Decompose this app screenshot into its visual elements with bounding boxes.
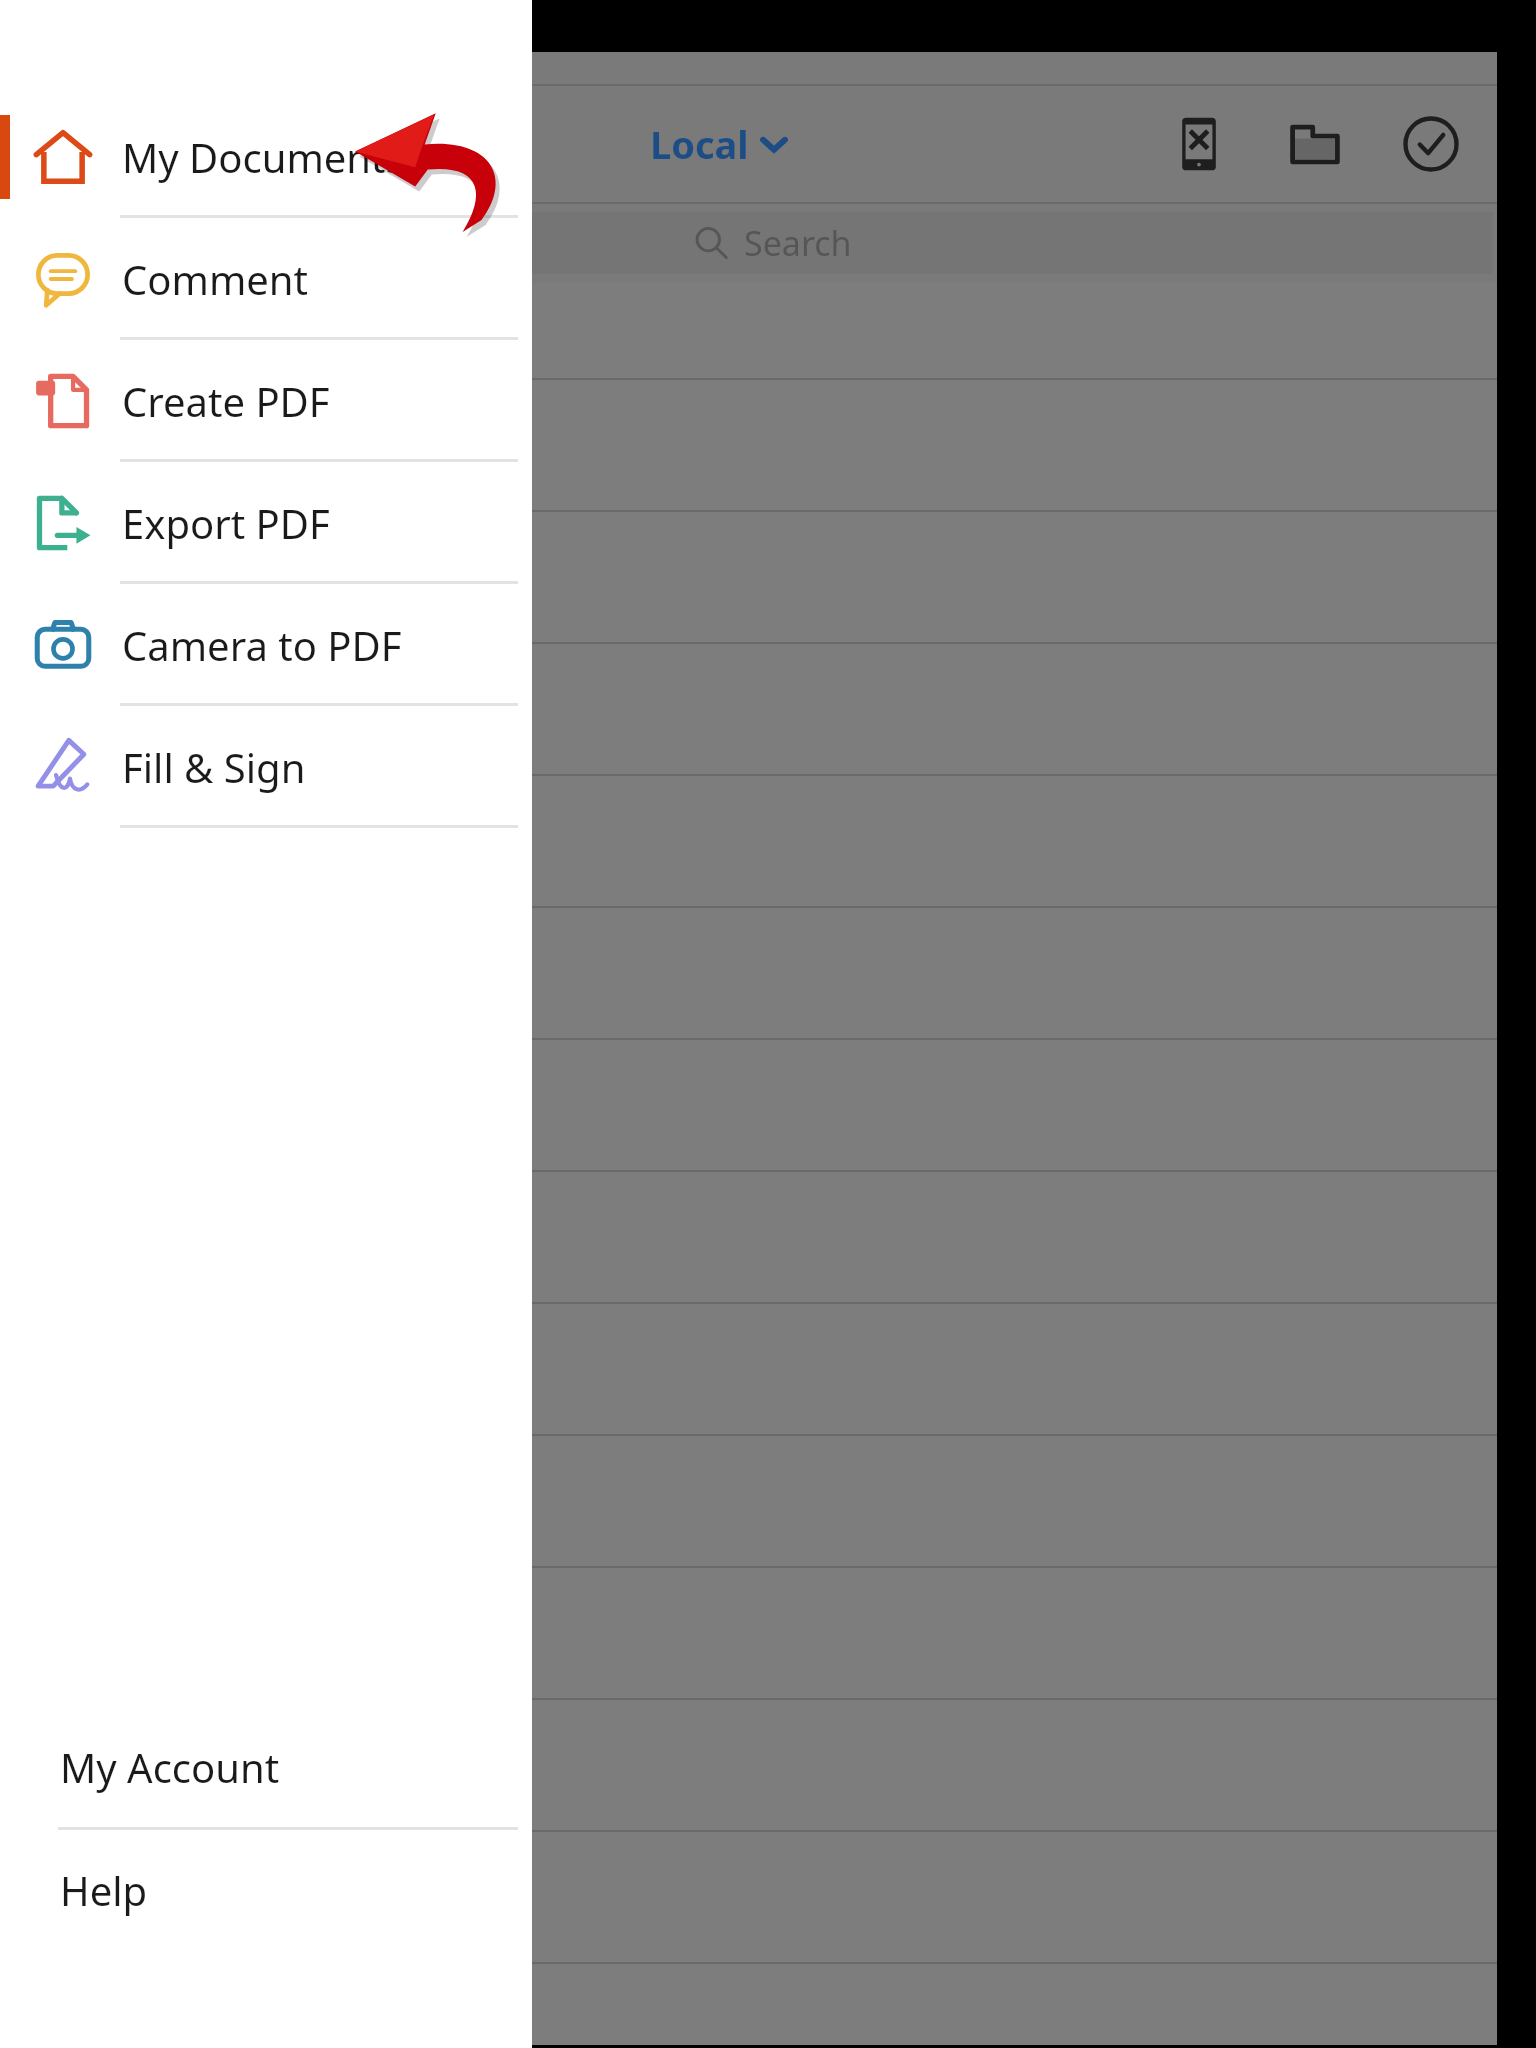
staticText: Camera to PDF [122,618,402,672]
button[interactable]: Camera to PDF [0,584,532,706]
staticText: My Documents [122,130,405,184]
button[interactable] [0,512,1497,642]
button[interactable] [0,1568,1497,1698]
button[interactable] [0,1436,1497,1566]
staticText: Search [744,220,852,266]
button[interactable] [0,1964,1497,2045]
button[interactable]: New folder [1279,108,1351,180]
button[interactable]: Create PDF [0,340,532,462]
button[interactable]: Export PDF [0,462,532,584]
button[interactable]: My Documents [0,96,532,218]
button[interactable] [0,1832,1497,1962]
button[interactable]: My Account [0,1707,532,1827]
staticText: My Account [60,1740,280,1794]
staticText: Export PDF [122,496,330,550]
button[interactable] [0,380,1497,510]
button[interactable]: Search [4,212,1493,274]
button[interactable]: Transfer to device [1163,108,1235,180]
button[interactable]: Fill & Sign [0,706,532,828]
button[interactable] [0,1304,1497,1434]
button[interactable] [0,644,1497,774]
button[interactable]: Local [650,118,787,170]
button[interactable]: Select [1395,108,1467,180]
button[interactable] [0,1700,1497,1830]
button[interactable] [0,1040,1497,1170]
button[interactable] [0,282,1497,378]
button[interactable]: Help [0,1830,532,1950]
staticText: Local [650,118,749,170]
staticText: Help [60,1863,148,1917]
button[interactable] [0,1172,1497,1302]
staticText: Create PDF [122,374,330,428]
button[interactable] [0,776,1497,906]
button[interactable]: Comment [0,218,532,340]
button[interactable] [0,908,1497,1038]
staticText: Comment [122,252,308,306]
staticText: Fill & Sign [122,740,306,794]
